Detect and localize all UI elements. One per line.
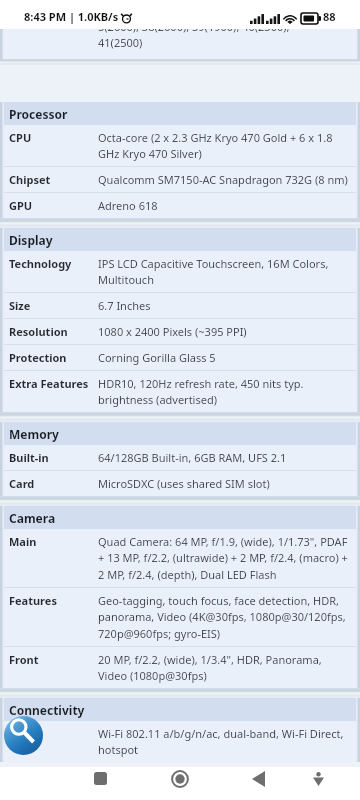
staticText: WLAN <box>9 726 98 741</box>
button[interactable]: Back <box>238 767 279 800</box>
button[interactable]: Front <box>4 647 356 688</box>
button[interactable]: Camera <box>4 506 356 529</box>
button[interactable]: CPU <box>4 125 356 167</box>
staticText: MicroSDXC (uses shared SIM slot) <box>98 476 270 491</box>
button[interactable]: Connectivity <box>4 698 356 721</box>
staticText: IPS LCD Capacitive Touchscreen, 16M Colo… <box>98 256 352 287</box>
button[interactable]: GPU <box>4 193 356 218</box>
staticText: CPU <box>9 130 98 145</box>
staticText: Processor <box>9 106 68 122</box>
staticText: Protection <box>9 350 98 365</box>
staticText: 8:43 PM | 1.0KB/s <box>24 9 119 24</box>
staticText: Corning Gorilla Glass 5 <box>98 350 216 365</box>
button[interactable]: Processor <box>4 102 356 125</box>
staticText: Card <box>9 476 98 491</box>
staticText: Resolution <box>9 324 98 339</box>
staticText: Qualcomm SM7150-AC Snapdragon 732G (8 nm… <box>98 172 348 187</box>
staticText: 5(2600), 38(2600), 39(1900), 40(2300), 4… <box>98 19 290 50</box>
button[interactable]: Built-in <box>4 445 356 471</box>
button[interactable]: Resolution <box>4 319 356 345</box>
staticText: Connectivity <box>9 702 85 718</box>
staticText: Chipset <box>9 172 98 187</box>
staticText: HDR10, 120Hz refresh rate, 450 nits typ.… <box>98 376 352 407</box>
staticText: Memory <box>9 426 59 442</box>
staticText: Adreno 618 <box>98 198 158 213</box>
button[interactable]: Search <box>4 716 43 755</box>
staticText: Front <box>9 652 98 667</box>
staticText: Octa-core (2 x 2.3 GHz Kryo 470 Gold + 6… <box>98 130 352 161</box>
button[interactable]: Technology <box>4 251 356 293</box>
staticText: Technology <box>9 256 98 271</box>
button[interactable]: Extra Features <box>4 371 356 412</box>
staticText: Extra Features <box>9 376 98 391</box>
staticText: 6.7 Inches <box>98 298 151 313</box>
staticText: 64/128GB Built-in, 6GB RAM, UFS 2.1 <box>98 450 287 465</box>
button[interactable]: Features <box>4 588 356 647</box>
button[interactable]: Size <box>4 293 356 319</box>
staticText: Wi-Fi 802.11 a/b/g/n/ac, dual-band, Wi-F… <box>98 726 352 757</box>
staticText: Quad Camera: 64 MP, f/1.9, (wide), 1/1.7… <box>98 534 352 582</box>
staticText: Camera <box>9 510 56 526</box>
staticText: Features <box>9 593 98 608</box>
button[interactable]: Memory <box>4 422 356 445</box>
staticText: Display <box>9 232 53 248</box>
staticText: 20 MP, f/2.2, (wide), 1/3.4", HDR, Panor… <box>98 652 352 683</box>
button[interactable]: WLAN <box>4 721 356 762</box>
staticText: Geo-tagging, touch focus, face detection… <box>98 593 352 641</box>
button[interactable]: Main <box>4 529 356 588</box>
staticText: Built-in <box>9 450 98 465</box>
staticText: GPU <box>9 198 98 213</box>
staticText: 1080 x 2400 Pixels (~395 PPI) <box>98 324 247 339</box>
button[interactable]: Home <box>159 767 200 800</box>
button[interactable]: Display <box>4 228 356 251</box>
button[interactable]: Protection <box>4 345 356 371</box>
button[interactable]: Card <box>4 471 356 496</box>
staticText: 88 <box>323 9 336 24</box>
button[interactable]: Recent apps <box>80 767 121 800</box>
button[interactable]: Hide keyboard <box>298 767 339 800</box>
staticText: Size <box>9 298 98 313</box>
staticText: Main <box>9 534 98 549</box>
button[interactable]: Chipset <box>4 167 356 193</box>
